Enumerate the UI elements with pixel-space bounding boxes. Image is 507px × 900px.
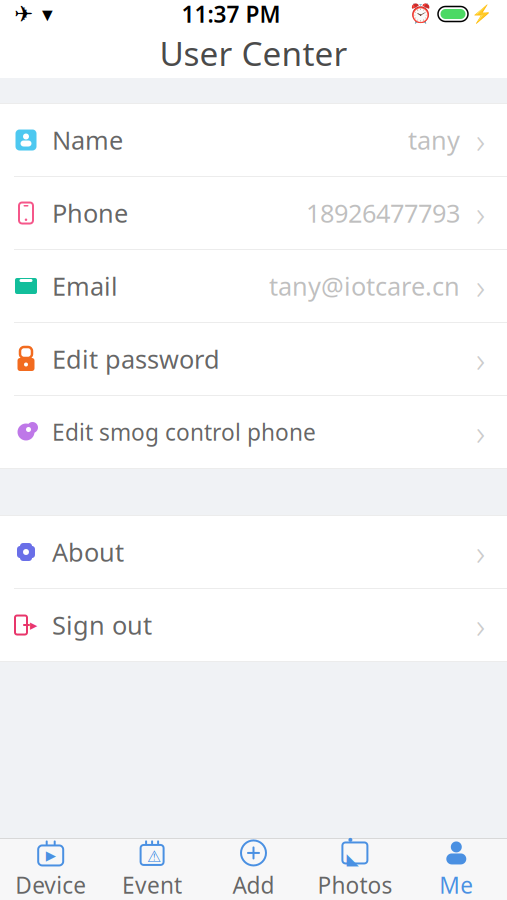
button[interactable]: Add [203, 839, 304, 899]
staticText: ▸ [30, 617, 37, 633]
button[interactable]: Phone [0, 177, 507, 250]
button[interactable]: Edit smog control phone [0, 396, 507, 469]
staticText: 18926477793 [306, 196, 460, 230]
staticText: › [476, 409, 485, 455]
staticText: ⚠ [147, 847, 161, 866]
staticText: Edit smog control phone [52, 417, 316, 447]
button[interactable]: ▸ [0, 589, 507, 662]
staticText: ▶ [46, 848, 56, 863]
staticText: ◣ [346, 850, 358, 868]
staticText: Photos [317, 870, 392, 900]
staticText: Event [122, 870, 182, 900]
staticText: › [476, 336, 485, 382]
staticText: Name [52, 123, 123, 157]
staticText: › [476, 117, 485, 163]
staticText: About [52, 535, 124, 569]
staticText: › [476, 529, 485, 575]
staticText: › [476, 602, 485, 648]
staticText: Add [232, 870, 274, 900]
button[interactable]: Me [406, 839, 507, 899]
button[interactable]: About [0, 516, 507, 589]
button[interactable]: Edit password [0, 323, 507, 396]
staticText: Sign out [52, 608, 152, 642]
staticText: ⚡ [471, 4, 493, 24]
button[interactable]: ⚠ [101, 839, 203, 899]
staticText: Email [52, 269, 118, 303]
staticText: Device [15, 870, 86, 900]
staticText: Edit password [52, 342, 220, 376]
staticText: ▾ [42, 2, 53, 26]
button[interactable]: Email [0, 250, 507, 323]
staticText: 11:37 PM [181, 0, 280, 29]
staticText: Me [439, 870, 473, 900]
staticText: › [476, 190, 485, 236]
button[interactable]: ◣ [304, 839, 406, 899]
staticText: ⏰ [409, 3, 432, 25]
staticText: User Center [159, 31, 347, 75]
staticText: › [476, 263, 485, 309]
staticText: tany [408, 123, 460, 157]
staticText: ✈ [14, 1, 33, 27]
staticText: tany@iotcare.cn [269, 269, 460, 303]
button[interactable]: Name [0, 104, 507, 177]
staticText: Phone [52, 196, 128, 230]
button[interactable]: ▶ [0, 839, 101, 899]
